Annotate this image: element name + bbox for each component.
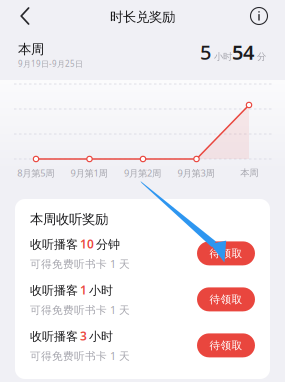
staticText: 时长兑奖励 <box>110 9 175 25</box>
staticText: 1 <box>80 282 87 298</box>
staticText: 收听播客 <box>30 329 78 344</box>
staticText: 小时 <box>89 329 113 344</box>
button[interactable]: Info <box>239 0 279 32</box>
staticText: 5 <box>200 39 211 65</box>
staticText: 本周 <box>240 167 258 179</box>
button[interactable]: 待领取 <box>197 241 255 265</box>
staticText: 待领取 <box>209 293 242 306</box>
staticText: 小时 <box>211 51 232 62</box>
staticText: 本周 <box>18 41 44 57</box>
staticText: 可得免费听书卡 1 天 <box>30 303 130 317</box>
staticText: 可得免费听书卡 1 天 <box>30 349 130 363</box>
staticText: 小时 <box>89 283 113 298</box>
staticText: 分 <box>254 51 266 62</box>
button[interactable]: 待领取 <box>197 333 255 357</box>
staticText: 9月第1周 <box>71 167 108 179</box>
button[interactable]: Back <box>3 0 47 32</box>
staticText: 本周收听奖励 <box>30 211 108 227</box>
staticText: 10 <box>80 236 94 252</box>
staticText: 9月19日-9月25日 <box>18 58 83 69</box>
staticText: 待领取 <box>209 247 242 260</box>
staticText: 收听播客 <box>30 283 78 298</box>
staticText: 分钟 <box>96 237 120 252</box>
staticText: 9月第3周 <box>177 167 214 179</box>
staticText: 54 <box>232 39 254 65</box>
staticText: 待领取 <box>209 339 242 352</box>
button[interactable]: 待领取 <box>197 287 255 311</box>
staticText: 9月第2周 <box>124 167 161 179</box>
staticText: 3 <box>80 328 87 344</box>
staticText: 收听播客 <box>30 237 78 252</box>
staticText: 可得免费听书卡 1 天 <box>30 257 130 271</box>
staticText: 8月第5周 <box>17 167 54 179</box>
